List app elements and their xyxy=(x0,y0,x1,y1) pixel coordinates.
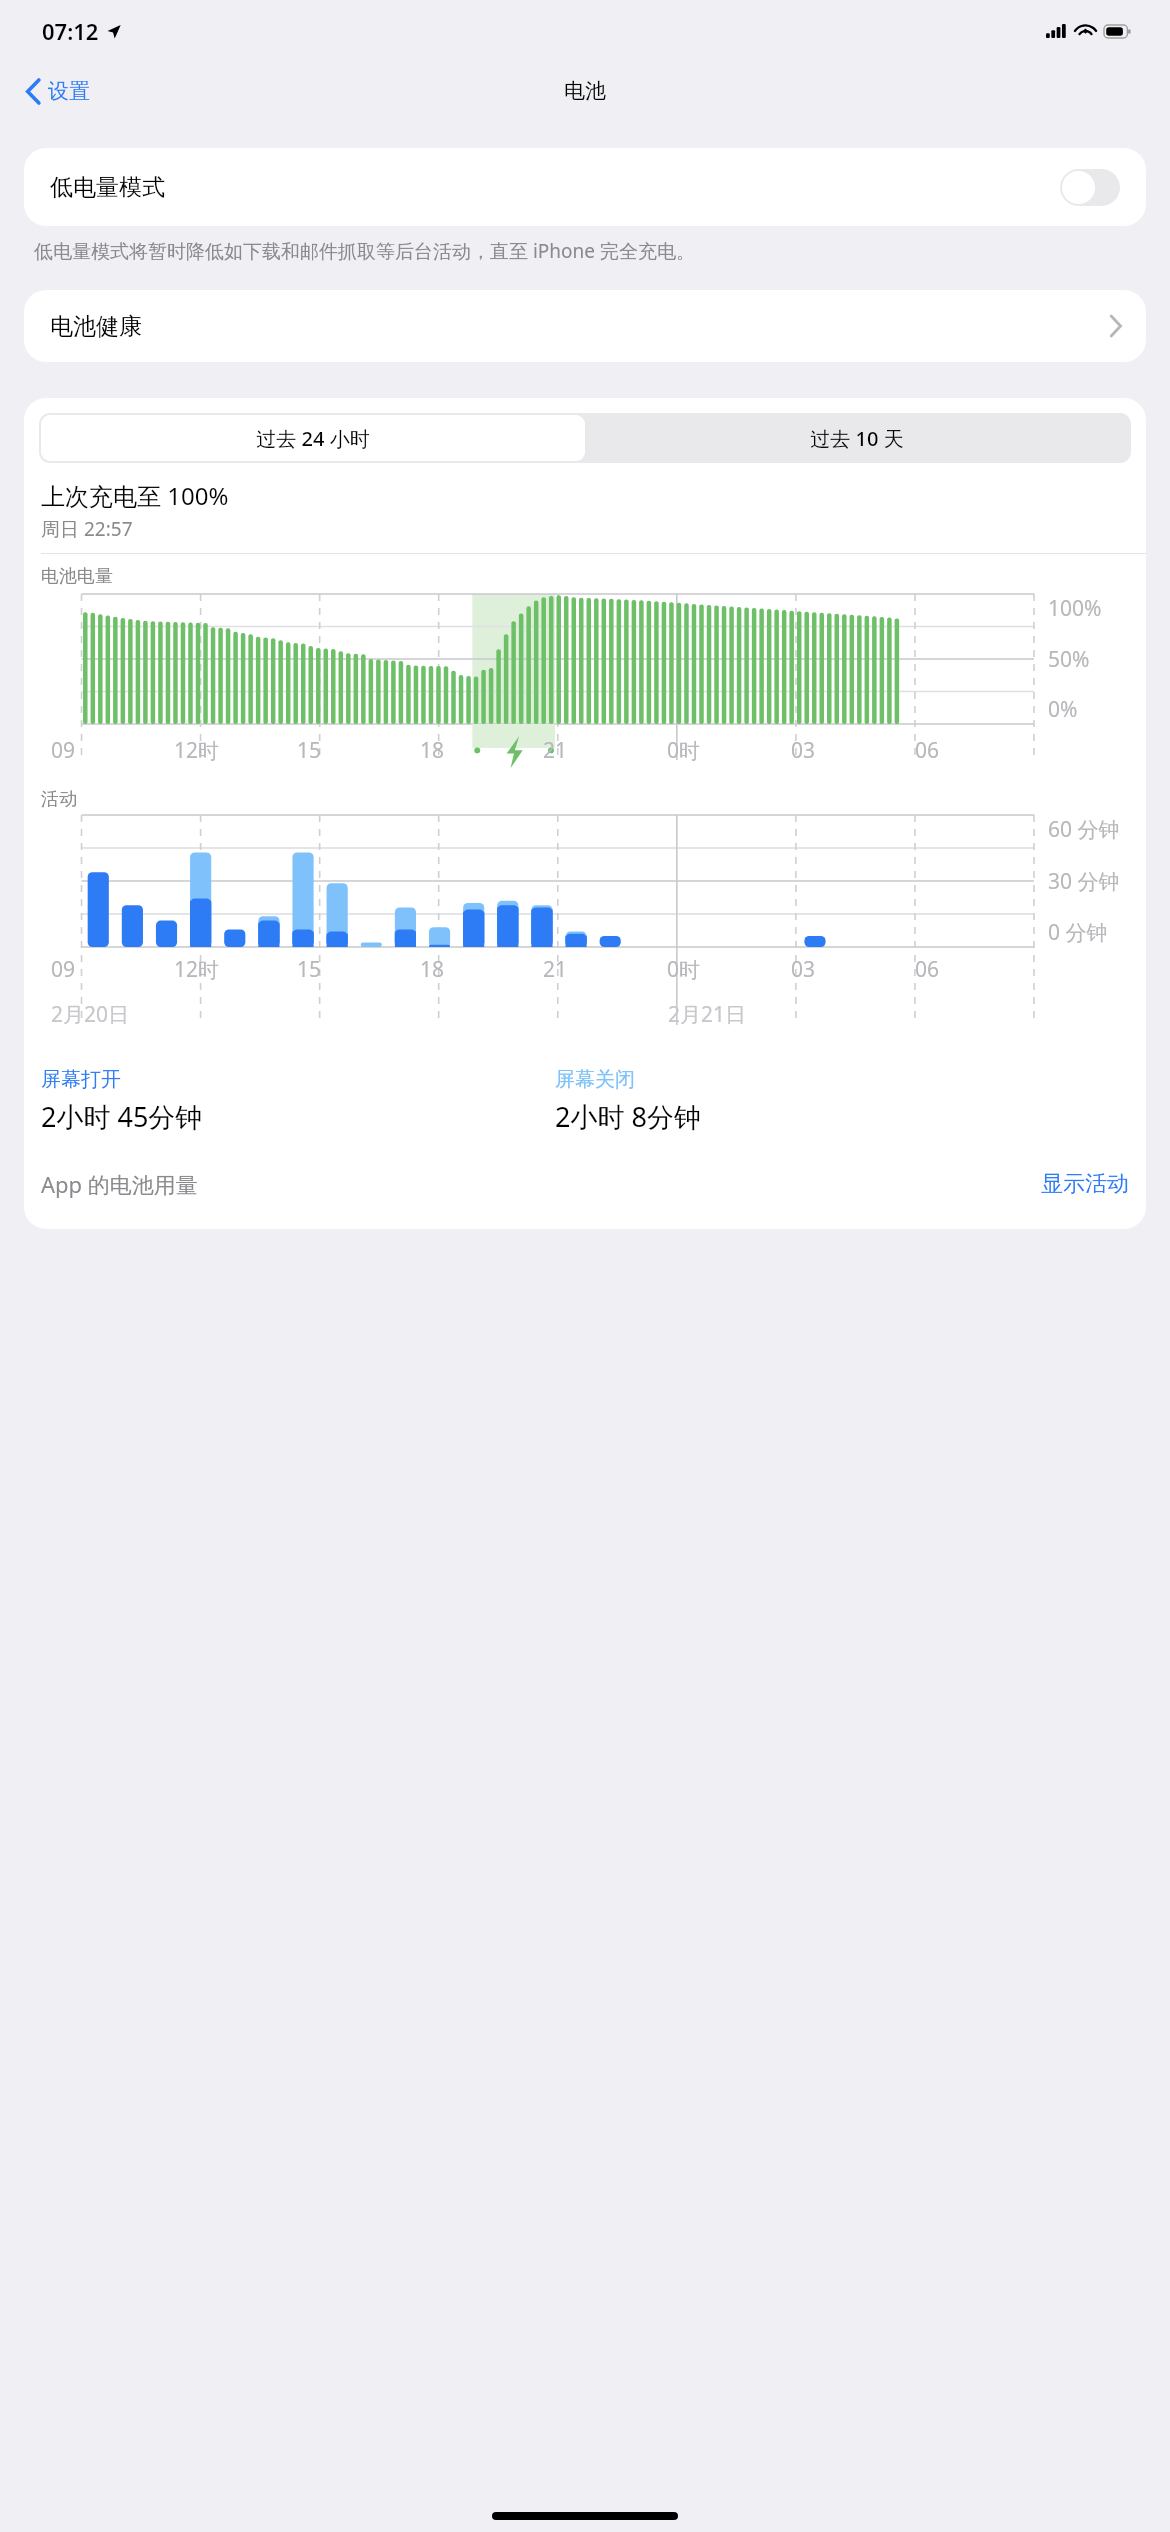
staticText: 0时 xyxy=(667,955,701,984)
button[interactable]: 低电量模式开关 xyxy=(1060,169,1120,206)
staticText: 活动 xyxy=(41,788,77,811)
staticText: App 的电池用量 xyxy=(41,1169,198,1199)
staticText: 2小时 45分钟 xyxy=(41,1098,203,1135)
staticText: 03 xyxy=(791,736,816,765)
button[interactable]: 屏幕关闭 xyxy=(555,1067,1146,1135)
staticText: 100% xyxy=(1048,594,1102,623)
staticText: 09 xyxy=(51,955,76,984)
staticText: 03 xyxy=(791,955,816,984)
staticText: 21 xyxy=(543,955,568,984)
staticText: 0 分钟 xyxy=(1048,918,1108,947)
staticText: 低电量模式 xyxy=(50,173,165,202)
staticText: 过去 10 天 xyxy=(810,425,904,452)
staticText: 0% xyxy=(1048,695,1078,724)
button[interactable]: 低电量模式 xyxy=(24,148,1146,226)
staticText: 21 xyxy=(543,736,568,765)
staticText: 06 xyxy=(915,736,940,765)
button[interactable]: 屏幕打开 xyxy=(41,1067,555,1135)
staticText: 12时 xyxy=(174,955,220,984)
staticText: 60 分钟 xyxy=(1048,815,1120,844)
staticText: 50% xyxy=(1048,645,1090,674)
staticText: 07:12 xyxy=(42,16,99,46)
staticText: 过去 24 小时 xyxy=(256,425,370,452)
staticText: 2月21日 xyxy=(668,1000,747,1029)
staticText: 15 xyxy=(297,736,322,765)
staticText: 2月20日 xyxy=(51,1000,130,1029)
staticText: 屏幕打开 xyxy=(41,1067,121,1092)
staticText: 屏幕关闭 xyxy=(555,1067,635,1092)
staticText: 09 xyxy=(51,736,76,765)
staticText: 低电量模式将暂时降低如下载和邮件抓取等后台活动，直至 iPhone 完全充电。 xyxy=(34,238,1136,264)
staticText: 12时 xyxy=(174,736,220,765)
staticText: 15 xyxy=(297,955,322,984)
staticText: 电池健康 xyxy=(50,312,142,341)
staticText: 设置 xyxy=(48,78,90,104)
button[interactable]: 电池健康 xyxy=(24,290,1146,362)
button[interactable]: 设置 xyxy=(20,72,96,110)
staticText: 18 xyxy=(420,955,445,984)
button[interactable]: 显示活动 xyxy=(1041,1170,1129,1198)
staticText: 0时 xyxy=(667,736,701,765)
staticText: 周日 22:57 xyxy=(41,516,133,542)
staticText: 上次充电至 100% xyxy=(41,479,229,512)
staticText: 显示活动 xyxy=(1041,1170,1129,1198)
staticText: 06 xyxy=(915,955,940,984)
staticText: 18 xyxy=(420,736,445,765)
staticText: 2小时 8分钟 xyxy=(555,1098,701,1135)
button[interactable]: 过去 10 天 xyxy=(585,415,1129,461)
staticText: 电池 xyxy=(564,78,606,104)
staticText: 电池电量 xyxy=(41,565,113,588)
button[interactable]: 过去 24 小时 xyxy=(41,415,585,461)
staticText: 30 分钟 xyxy=(1048,867,1120,896)
